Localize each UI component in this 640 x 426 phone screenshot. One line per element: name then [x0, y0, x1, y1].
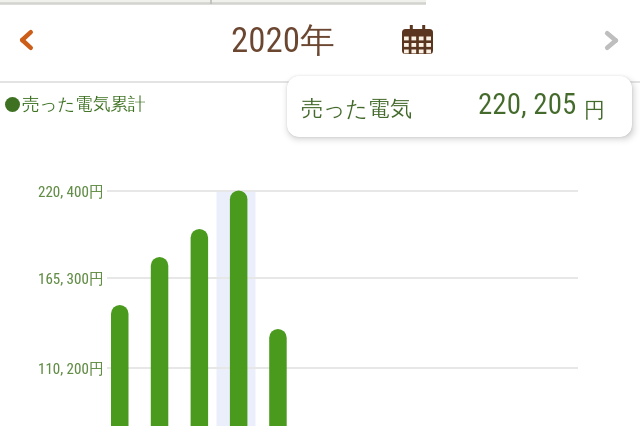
- button[interactable]: Next year: [589, 18, 633, 62]
- staticText: 売った電気: [301, 95, 413, 123]
- button[interactable]: Previous year: [4, 18, 48, 62]
- staticText: 110, 200円: [38, 360, 104, 379]
- staticText: 2020年: [231, 18, 336, 62]
- staticText: 165, 300円: [38, 270, 104, 289]
- staticText: 円: [584, 97, 605, 123]
- button[interactable]: Select date: [395, 17, 440, 62]
- staticText: 220, 400円: [38, 183, 104, 202]
- button[interactable]: 売った電気: [287, 76, 632, 137]
- staticText: 220, 205: [478, 87, 577, 121]
- staticText: 売った電気累計: [22, 93, 146, 115]
